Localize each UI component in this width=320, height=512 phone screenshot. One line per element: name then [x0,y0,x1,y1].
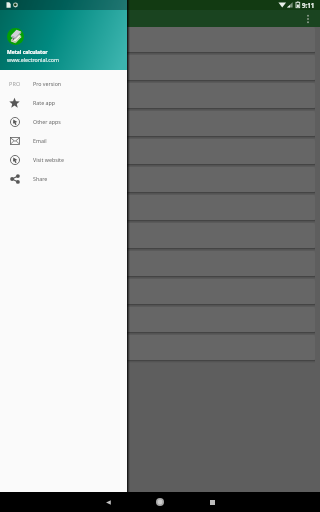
button[interactable]: Visit website [0,150,127,169]
button[interactable]: Home [150,492,170,512]
staticText: Pro version [33,80,62,87]
button[interactable] [5,335,315,360]
button[interactable] [5,251,315,276]
button[interactable] [5,55,315,80]
button[interactable]: Rate app [0,93,127,112]
staticText: Other apps [33,118,61,125]
button[interactable]: Back [98,492,118,512]
staticText: Rate app [33,99,56,106]
button[interactable] [5,83,315,108]
staticText: Visit website [33,156,64,163]
button[interactable]: Email [0,131,127,150]
staticText: www.electronial.com [7,56,59,63]
staticText: PRO [9,80,21,87]
staticText: Metal calculator [7,49,48,56]
button[interactable]: PRO [0,74,127,93]
button[interactable] [5,279,315,304]
staticText: Share [33,175,48,182]
button[interactable] [5,195,315,220]
staticText: Email [33,137,47,144]
button[interactable] [5,307,315,332]
button[interactable] [5,139,315,164]
button[interactable]: More options [300,11,316,27]
button[interactable]: Recent apps [202,492,222,512]
button[interactable] [5,27,315,52]
staticText: 9:11 [302,1,315,9]
button[interactable] [5,223,315,248]
button[interactable]: Share [0,169,127,188]
button[interactable] [5,167,315,192]
button[interactable]: Other apps [0,112,127,131]
button[interactable] [5,111,315,136]
